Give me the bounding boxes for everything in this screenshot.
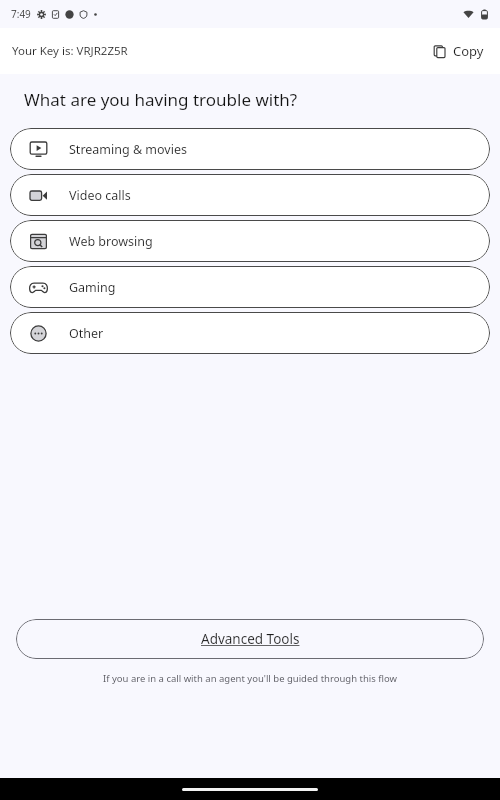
staticText: Your Key is: VRJR2Z5R — [12, 43, 128, 59]
staticText: Video calls — [69, 187, 131, 204]
button[interactable]: Advanced Tools — [16, 619, 484, 659]
button[interactable]: Streaming & movies — [10, 128, 490, 170]
button[interactable]: Other — [10, 312, 490, 354]
staticText: What are you having trouble with? — [24, 88, 298, 111]
staticText: Streaming & movies — [69, 141, 187, 158]
staticText: Copy — [453, 42, 484, 60]
staticText: Gaming — [69, 279, 116, 296]
staticText: Web browsing — [69, 233, 153, 250]
staticText: If you are in a call with an agent you'l… — [20, 672, 480, 685]
button[interactable]: Copy — [428, 38, 488, 64]
staticText: Advanced Tools — [201, 630, 300, 648]
button[interactable]: Web browsing — [10, 220, 490, 262]
button[interactable]: Gaming — [10, 266, 490, 308]
staticText: Other — [69, 325, 104, 342]
staticText: 7:49 — [11, 7, 31, 21]
button[interactable]: Video calls — [10, 174, 490, 216]
